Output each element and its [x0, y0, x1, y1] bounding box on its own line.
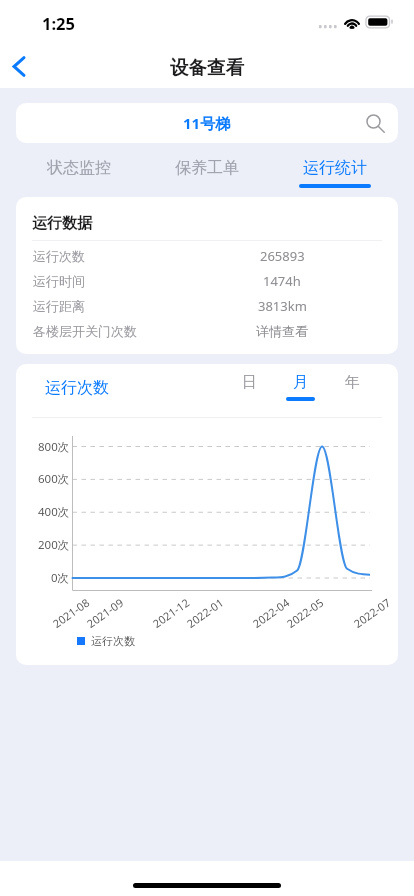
button[interactable]: 各楼层开关门次数: [16, 318, 398, 343]
button[interactable]: 日: [235, 373, 264, 401]
button[interactable]: 状态监控: [15, 156, 143, 188]
button[interactable]: 年: [338, 373, 367, 401]
staticText: 运行数据: [32, 214, 92, 233]
staticText: 运行统计: [303, 158, 367, 178]
staticText: 运行次数: [33, 248, 85, 264]
staticText: 运行时间: [33, 273, 85, 289]
button[interactable]: 11号梯: [16, 103, 398, 143]
staticText: 月: [293, 373, 308, 392]
staticText: 11号梯: [183, 113, 231, 133]
staticText: 详情查看: [256, 323, 308, 339]
button[interactable]: 运行时间: [16, 268, 398, 293]
staticText: 状态监控: [47, 158, 111, 178]
staticText: 3813km: [258, 297, 307, 315]
button[interactable]: 运行距离: [16, 293, 398, 318]
button[interactable]: 保养工单: [143, 156, 271, 188]
button[interactable]: 运行统计: [271, 156, 399, 188]
staticText: 保养工单: [175, 158, 239, 178]
staticText: 265893: [260, 247, 305, 265]
button[interactable]: Search: [362, 110, 388, 136]
staticText: 运行距离: [33, 298, 85, 314]
staticText: 1:25: [42, 12, 75, 34]
button[interactable]: 月: [286, 373, 315, 401]
staticText: 运行次数: [45, 378, 109, 398]
button[interactable]: Back: [0, 44, 44, 88]
staticText: 日: [242, 373, 257, 392]
staticText: 各楼层开关门次数: [33, 323, 137, 339]
staticText: 1474h: [263, 272, 301, 290]
staticText: 设备查看: [170, 56, 244, 79]
button[interactable]: 运行次数: [16, 243, 398, 268]
staticText: 年: [345, 373, 360, 392]
